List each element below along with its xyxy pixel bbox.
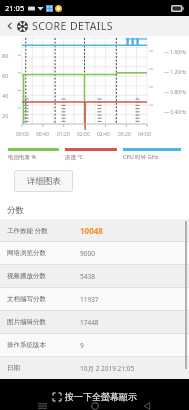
staticText: 温度 ℃	[65, 153, 83, 161]
button[interactable]: 图片编辑分数	[0, 311, 189, 333]
staticText: 视频播放分数	[7, 272, 46, 280]
staticText: 9	[80, 341, 84, 350]
staticText: 工作效能 分数	[7, 226, 48, 235]
staticText: 17448	[80, 318, 99, 327]
button[interactable]: Back	[4, 20, 16, 32]
button[interactable]: 按一下全螢幕顯示	[0, 391, 189, 402]
staticText: 分数	[7, 205, 24, 216]
staticText: CPU 时钟 GHz	[123, 153, 159, 161]
button[interactable]: 视频播放分数	[0, 265, 189, 287]
staticText: 00:40	[36, 131, 49, 138]
staticText: 02:00	[77, 131, 90, 138]
staticText: 10月 2 2019 21:05	[80, 364, 135, 373]
staticText: 详细图表	[27, 176, 61, 187]
button[interactable]: 操作系统版本	[0, 334, 189, 356]
button[interactable]: 工作效能 分数	[0, 219, 189, 241]
staticText: 网络浏览分数	[7, 249, 46, 257]
staticText: 操作系统版本	[7, 341, 46, 349]
staticText: 80	[2, 52, 9, 59]
staticText: 04:00	[138, 131, 151, 138]
staticText: 00:00	[16, 131, 29, 138]
staticText: 9000	[80, 249, 95, 258]
staticText: 按一下全螢幕顯示	[65, 391, 137, 402]
button[interactable]: Back	[0, 16, 189, 36]
staticText: 日期	[7, 364, 20, 372]
button[interactable]: 网络浏览分数	[0, 242, 189, 264]
button[interactable]: 详细图表	[14, 170, 73, 192]
staticText: — 1.60Hz	[164, 49, 187, 56]
staticText: SCORE DETAILS	[32, 19, 113, 33]
button[interactable]: 日期	[0, 357, 189, 379]
staticText: 5438	[80, 272, 95, 281]
staticText: 图片编辑分数	[7, 318, 46, 326]
staticText: 10048	[80, 225, 103, 236]
staticText: 01:20	[57, 131, 70, 138]
staticText: 60	[2, 72, 9, 79]
staticText: — 1.20Hz	[164, 69, 187, 76]
staticText: — 0.40Hz	[164, 109, 187, 116]
button[interactable]: Home	[84, 402, 106, 410]
staticText: 文档编写分数	[7, 295, 46, 303]
button[interactable]: 文档编写分数	[0, 288, 189, 310]
staticText: 03:20	[118, 131, 131, 138]
staticText: — 0.80Hz	[164, 89, 187, 96]
staticText: 11937	[80, 295, 99, 304]
staticText: 02:40	[97, 131, 110, 138]
staticText: 40	[2, 92, 9, 99]
staticText: 20	[2, 112, 9, 119]
button[interactable]: Recent apps	[31, 402, 53, 410]
staticText: 电池电量 %	[8, 153, 37, 161]
button[interactable]: Back	[136, 402, 158, 410]
staticText: 21:05	[5, 3, 25, 13]
